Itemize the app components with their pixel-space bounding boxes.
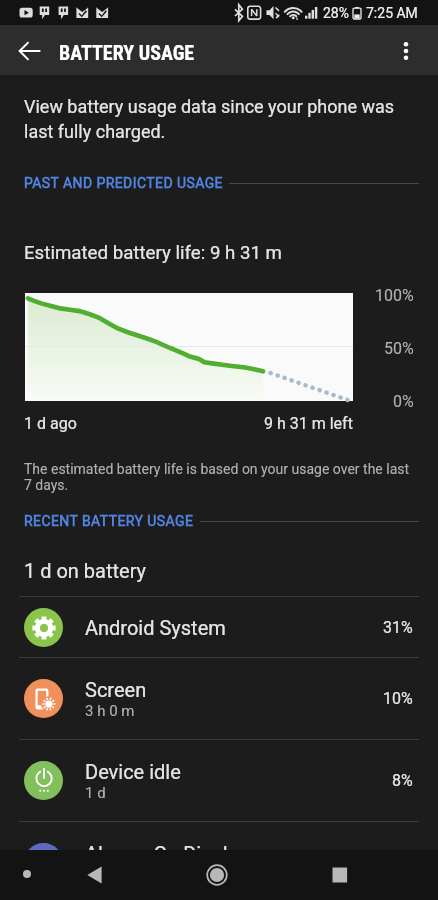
staticText: 1 d (85, 784, 106, 802)
button[interactable]: Home (192, 850, 242, 900)
staticText: 1 d on battery (24, 559, 147, 582)
button[interactable]: Notifications (3, 850, 51, 898)
staticText: The estimated battery life is based on y… (24, 461, 418, 493)
staticText: Always On Display (85, 842, 248, 865)
staticText: 7:25 AM (366, 5, 418, 21)
staticText: Estimated battery life: 9 h 31 m (24, 242, 282, 264)
button[interactable]: Back (70, 850, 120, 900)
staticText: 9 h 31 m left (264, 414, 353, 433)
button[interactable]: More options (386, 30, 426, 70)
staticText: 3 h 0 m (85, 702, 135, 720)
button[interactable]: Android System (0, 597, 438, 657)
button[interactable]: Always On Display (0, 822, 438, 900)
staticText: 1 d (85, 866, 106, 884)
staticText: 8% (392, 771, 413, 790)
button[interactable]: Navigate up (8, 28, 52, 72)
staticText: 31% (383, 618, 413, 637)
staticText: RECENT BATTERY USAGE (24, 513, 194, 529)
staticText: 1 d ago (24, 414, 77, 433)
staticText: 50% (384, 339, 414, 358)
staticText: Device idle (85, 760, 181, 783)
staticText: View battery usage data since your phone… (24, 96, 396, 142)
staticText: 28% (323, 5, 349, 21)
button[interactable]: Recent apps (315, 850, 365, 900)
staticText: 100% (375, 286, 414, 305)
staticText: PAST AND PREDICTED USAGE (24, 175, 223, 191)
button[interactable]: Screen (0, 658, 438, 739)
button[interactable]: Device idle (0, 740, 438, 821)
staticText: Android System (85, 616, 226, 639)
staticText: Screen (85, 678, 147, 701)
staticText: 10% (383, 689, 413, 708)
staticText: 0% (393, 392, 414, 411)
staticText: BATTERY USAGE (59, 41, 195, 64)
